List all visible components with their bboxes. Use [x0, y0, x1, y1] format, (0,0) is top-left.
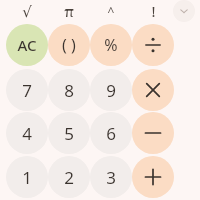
- button[interactable]: Plus: [132, 156, 174, 198]
- staticText: 4: [22, 122, 32, 145]
- staticText: 5: [64, 122, 74, 145]
- button[interactable]: 1: [6, 156, 48, 198]
- staticText: 2: [64, 166, 74, 189]
- button[interactable]: 2: [48, 156, 90, 198]
- button[interactable]: %: [90, 24, 132, 66]
- staticText: ( ): [62, 34, 76, 56]
- button[interactable]: Divide: [132, 24, 174, 66]
- button[interactable]: More functions: [173, 0, 195, 22]
- button[interactable]: Power: [95, 0, 127, 22]
- button[interactable]: 5: [48, 112, 90, 154]
- staticText: π: [64, 1, 74, 21]
- button[interactable]: ( ): [48, 24, 90, 66]
- button[interactable]: Minus: [132, 112, 174, 154]
- staticText: √: [22, 3, 32, 20]
- staticText: 7: [22, 79, 32, 102]
- staticText: AC: [17, 35, 37, 55]
- staticText: !: [151, 1, 156, 21]
- staticText: 6: [106, 122, 116, 145]
- button[interactable]: AC: [6, 24, 48, 66]
- staticText: 1: [22, 166, 32, 189]
- staticText: ^: [107, 2, 115, 20]
- staticText: %: [104, 34, 118, 56]
- button[interactable]: Factorial: [137, 0, 169, 22]
- button[interactable]: Pi: [53, 0, 85, 22]
- button[interactable]: 4: [6, 112, 48, 154]
- staticText: 8: [64, 79, 74, 102]
- button[interactable]: 9: [90, 69, 132, 111]
- button[interactable]: 8: [48, 69, 90, 111]
- button[interactable]: 7: [6, 69, 48, 111]
- button[interactable]: Square root: [11, 0, 43, 22]
- staticText: 9: [106, 79, 116, 102]
- button[interactable]: 3: [90, 156, 132, 198]
- button[interactable]: Multiply: [132, 69, 174, 111]
- staticText: 3: [106, 166, 116, 189]
- button[interactable]: 6: [90, 112, 132, 154]
